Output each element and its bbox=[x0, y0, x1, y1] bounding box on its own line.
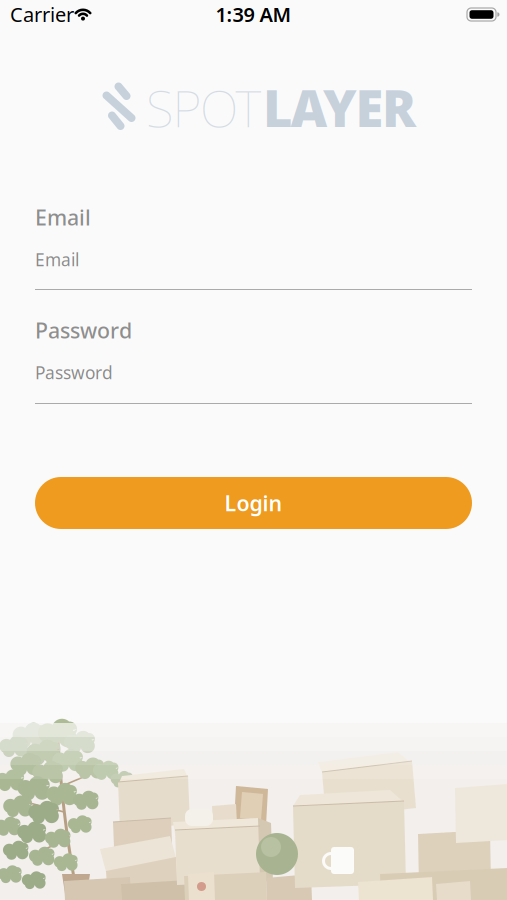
staticText: Email bbox=[35, 248, 79, 271]
staticText: Password bbox=[35, 361, 113, 384]
staticText: Password bbox=[35, 316, 132, 344]
staticText: LAYER bbox=[263, 74, 416, 141]
button[interactable]: Login bbox=[35, 477, 472, 529]
staticText: 1:39 AM bbox=[215, 1, 291, 28]
staticText: Login bbox=[224, 489, 282, 517]
staticText: Carrier bbox=[10, 1, 74, 28]
staticText: SPOT bbox=[146, 74, 261, 141]
button[interactable]: Email bbox=[35, 246, 472, 290]
staticText: Email bbox=[35, 203, 91, 231]
button[interactable]: Password bbox=[35, 360, 472, 404]
